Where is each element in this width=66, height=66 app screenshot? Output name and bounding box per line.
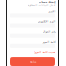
staticText: نسيت كلمة المرور؟: [33, 50, 55, 53]
staticText: إنشاء حساب: [38, 1, 55, 4]
staticText: متابعة: [29, 60, 35, 63]
staticText: كلمة المرور: [42, 40, 55, 43]
staticText: أدخل البيانات المطلوبة: [27, 4, 55, 7]
staticText: البريد الإلكتروني: [37, 20, 55, 23]
staticText: رقم الجوال: [42, 30, 55, 33]
staticText: الاسم: [48, 10, 55, 13]
button[interactable]: متابعة: [10, 57, 55, 66]
